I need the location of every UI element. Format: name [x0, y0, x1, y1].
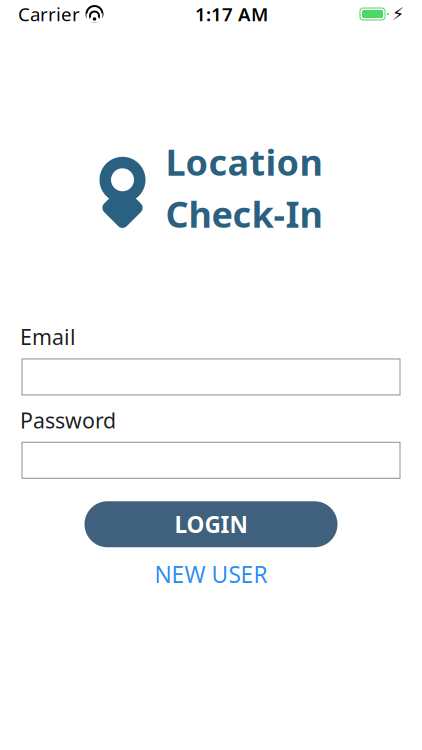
staticText: 1:17 AM	[195, 2, 268, 26]
staticText: Carrier	[18, 2, 80, 26]
staticText: Check-In	[165, 190, 322, 238]
staticText: Email	[20, 323, 76, 351]
staticText: Password	[20, 406, 116, 434]
staticText: LOGIN	[174, 509, 247, 539]
staticText: ⚡︎	[392, 4, 404, 24]
staticText: Location	[165, 138, 322, 186]
button[interactable]: LOGIN	[84, 501, 337, 547]
button[interactable]: NEW USER	[111, 559, 311, 589]
staticText: NEW USER	[154, 559, 267, 589]
